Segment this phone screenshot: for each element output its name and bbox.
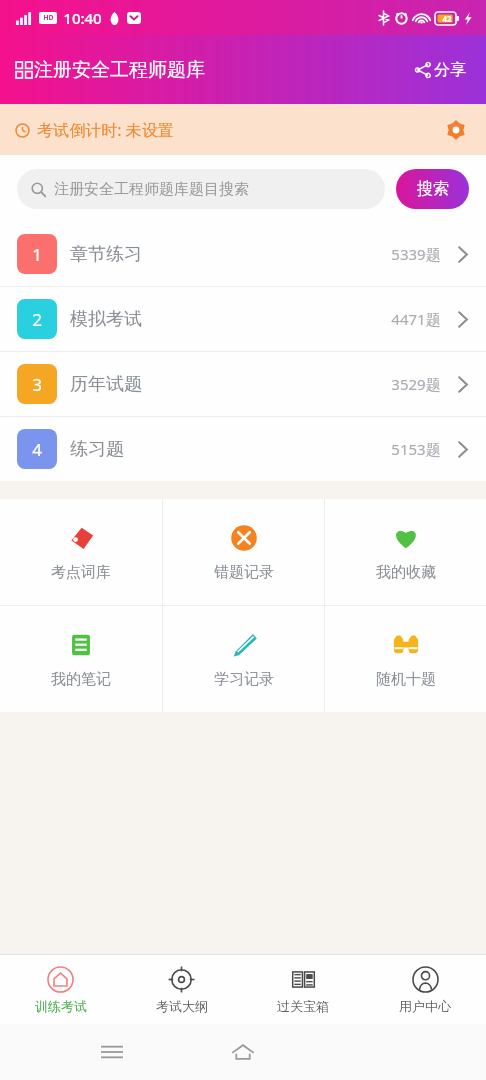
button[interactable]: 2 — [0, 287, 486, 351]
staticText: 训练考试 — [35, 998, 87, 1014]
button[interactable]: 学习记录 — [163, 606, 324, 712]
button[interactable]: 分享 — [411, 56, 470, 84]
staticText: HD — [43, 13, 54, 23]
staticText: 10:40 — [63, 8, 102, 28]
staticText: 考点词库 — [51, 563, 111, 582]
staticText: 1 — [32, 243, 42, 266]
staticText: 随机十题 — [376, 670, 436, 689]
staticText: 错题记录 — [214, 563, 274, 582]
staticText: 我的收藏 — [376, 563, 436, 582]
staticText: 我的笔记 — [51, 670, 111, 689]
button[interactable]: 搜索 — [396, 169, 469, 209]
button[interactable]: Recents — [92, 1032, 132, 1072]
button[interactable]: 注册安全工程师题库题目搜索 — [17, 169, 385, 209]
staticText: 注册安全工程师题库题目搜索 — [54, 180, 249, 199]
staticText: 2 — [32, 308, 42, 331]
button[interactable]: 4 — [0, 417, 486, 481]
staticText: 5153题 — [391, 439, 441, 459]
staticText: 分享 — [434, 60, 466, 80]
staticText: 搜索 — [417, 179, 449, 199]
staticText: 注册安全工程师题库 — [34, 58, 205, 82]
staticText: 3529题 — [391, 374, 441, 394]
button[interactable]: 1 — [0, 222, 486, 286]
button[interactable]: 我的笔记 — [0, 606, 162, 712]
staticText: 5339题 — [391, 244, 441, 264]
button[interactable]: 过关宝箱 — [242, 955, 364, 1024]
staticText: 4 — [32, 438, 42, 461]
button[interactable]: 3 — [0, 352, 486, 416]
staticText: 用户中心 — [399, 998, 451, 1014]
staticText: 历年试题 — [70, 373, 142, 396]
button[interactable]: 错题记录 — [163, 499, 324, 605]
staticText: 学习记录 — [214, 670, 274, 689]
button[interactable]: Home — [223, 1032, 263, 1072]
staticText: 3 — [32, 373, 42, 396]
staticText: 模拟考试 — [70, 308, 142, 331]
button[interactable]: 我的收藏 — [325, 499, 486, 605]
staticText: 过关宝箱 — [277, 998, 329, 1014]
staticText: 练习题 — [70, 438, 124, 461]
button[interactable]: 考试倒计时: 未设置 — [0, 104, 486, 155]
button[interactable]: 设置 — [442, 116, 470, 144]
staticText: 考试倒计时: 未设置 — [37, 119, 174, 141]
staticText: 章节练习 — [70, 243, 142, 266]
button[interactable]: 随机十题 — [325, 606, 486, 712]
staticText: 考试大纲 — [156, 998, 208, 1014]
staticText: 4471题 — [391, 309, 441, 329]
button[interactable]: 用户中心 — [364, 955, 486, 1024]
staticText: 42 — [442, 13, 452, 24]
button[interactable]: 训练考试 — [0, 955, 121, 1024]
button[interactable]: 考点词库 — [0, 499, 162, 605]
button[interactable]: 考试大纲 — [121, 955, 242, 1024]
